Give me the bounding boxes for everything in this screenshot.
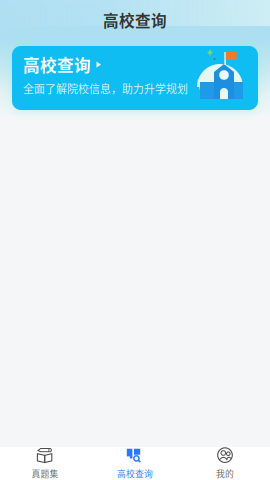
button[interactable]: 真题集 <box>0 447 90 480</box>
staticText: 高校查询 <box>103 9 167 31</box>
button[interactable]: 高校查询 <box>90 447 180 480</box>
staticText: 高校查询 <box>117 467 153 480</box>
button[interactable]: 高校查询 <box>12 46 258 110</box>
staticText: 全面了解院校信息，助力升学规划 <box>23 81 188 96</box>
staticText: 我的 <box>216 467 234 480</box>
button[interactable]: 我的 <box>180 447 270 480</box>
staticText: 高校查询 <box>23 52 91 77</box>
staticText: 真题集 <box>31 467 58 480</box>
